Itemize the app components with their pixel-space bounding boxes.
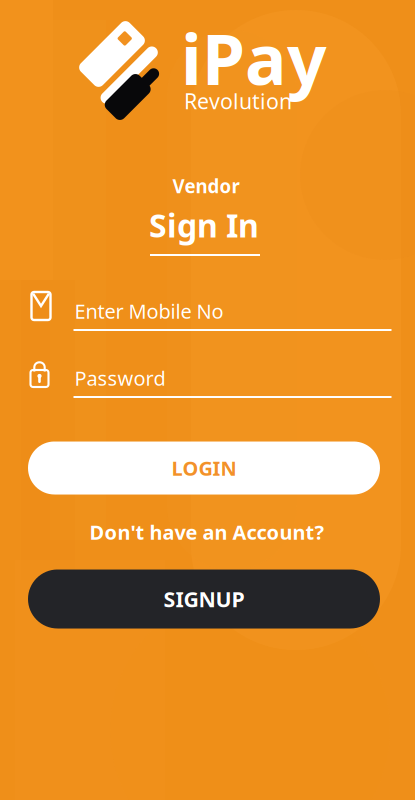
button[interactable]: LOGIN [28,441,380,494]
staticText: iPay [181,12,327,104]
staticText: Sign In [149,204,259,246]
button[interactable]: SIGNUP [28,569,380,628]
button[interactable]: Enter Mobile No [0,278,414,334]
staticText: Revolution [184,87,292,115]
staticText: Enter Mobile No [74,298,223,324]
staticText: Don't have an Account? [89,519,324,545]
staticText: Password [74,365,165,391]
staticText: LOGIN [171,455,236,481]
button[interactable]: Password [0,345,414,401]
staticText: SIGNUP [163,585,244,613]
staticText: Vendor [172,174,239,198]
button[interactable]: Don't have an Account? [89,519,324,545]
